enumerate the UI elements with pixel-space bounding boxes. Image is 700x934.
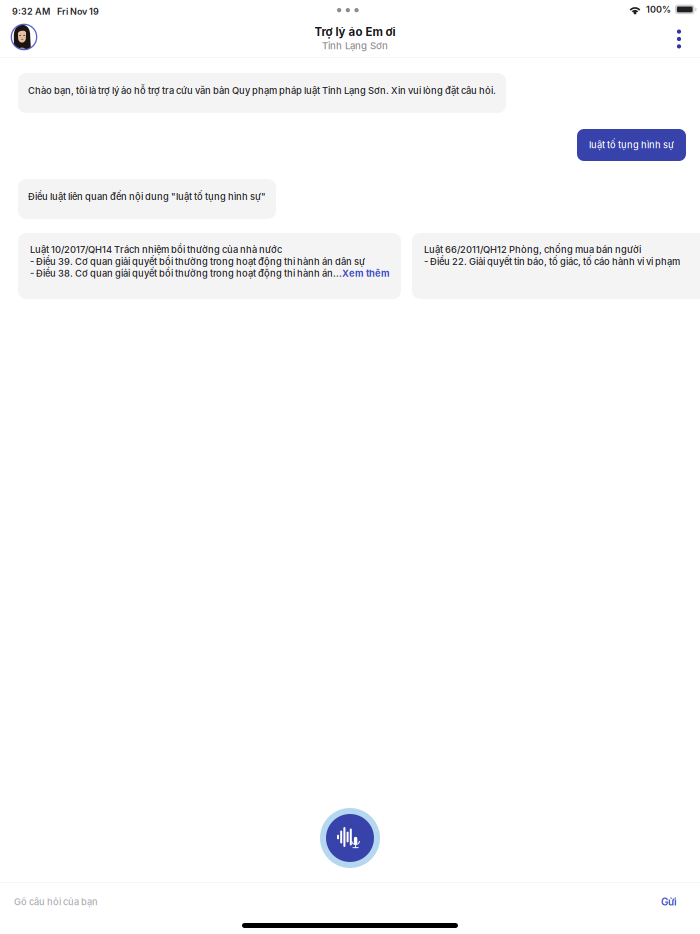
button[interactable]: Luật 10/2017/QH14 Trách nhiệm bồi thường… xyxy=(18,233,401,299)
staticText: - Điều 39. Cơ quan giải quyết bồi thường… xyxy=(30,256,365,267)
staticText: Chào bạn, tôi là trợ lý ảo hỗ trợ tra cứ… xyxy=(28,85,496,96)
staticText: Tỉnh Lạng Sơn xyxy=(322,40,388,51)
staticText: Điều luật liên quan đến nội dung "luật t… xyxy=(28,191,266,202)
staticText: Luật 10/2017/QH14 Trách nhiệm bồi thường… xyxy=(30,244,282,255)
button[interactable]: Profile photo xyxy=(7,20,41,54)
button[interactable]: Luật 66/2011/QH12 Phòng, chống mua bán n… xyxy=(412,233,700,299)
staticText: Luật 66/2011/QH12 Phòng, chống mua bán n… xyxy=(424,244,641,255)
button[interactable]: Message field xyxy=(0,883,640,921)
staticText: Gõ câu hỏi của bạn xyxy=(14,896,98,907)
staticText: 100% xyxy=(646,4,671,15)
staticText: - Điều 22. Giải quyết tin báo, tố giác, … xyxy=(424,256,680,267)
button[interactable]: Voice input xyxy=(320,808,380,868)
staticText: Trợ lý ảo Em ơi xyxy=(314,25,395,39)
staticText: Xem thêm xyxy=(342,268,390,279)
button[interactable]: Gửi xyxy=(652,889,686,915)
staticText: Fri Nov 19 xyxy=(57,6,99,17)
staticText: luật tố tụng hình sự xyxy=(589,139,674,150)
staticText: 9:32 AM xyxy=(12,6,50,17)
button[interactable]: More options xyxy=(664,22,694,56)
staticText: Gửi xyxy=(661,896,677,908)
staticText: - Điều 38. Cơ quan giải quyết bồi thường… xyxy=(30,268,342,279)
